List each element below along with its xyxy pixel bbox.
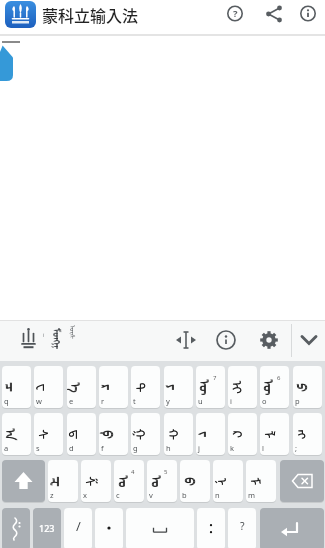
button[interactable]: ᠣ bbox=[114, 460, 144, 502]
button[interactable]: ᠫ bbox=[293, 366, 322, 408]
button[interactable]: ᠢ bbox=[228, 366, 257, 408]
staticText: ᠦ bbox=[196, 379, 218, 396]
staticText: ᠢ bbox=[228, 380, 251, 394]
button[interactable] bbox=[280, 460, 324, 502]
staticText: 7 bbox=[213, 374, 217, 382]
button[interactable] bbox=[5, 1, 36, 28]
button[interactable]: ᠶ bbox=[164, 366, 193, 408]
staticText: 5 bbox=[164, 468, 168, 476]
staticText: c bbox=[116, 490, 120, 500]
button[interactable]: ᠴ bbox=[2, 366, 31, 408]
staticText: ᠠ bbox=[2, 428, 24, 441]
staticText: ᠷ bbox=[99, 384, 121, 391]
staticText: s bbox=[36, 443, 40, 453]
staticText: ᠶ bbox=[164, 384, 186, 391]
staticText: d bbox=[69, 443, 74, 453]
staticText: o bbox=[262, 396, 267, 406]
staticText: ᠵ bbox=[196, 431, 218, 438]
button[interactable] bbox=[298, 329, 320, 351]
button[interactable] bbox=[197, 508, 225, 548]
button[interactable]: ᠥ bbox=[260, 366, 289, 408]
button[interactable] bbox=[33, 508, 61, 548]
staticText: k bbox=[230, 443, 235, 453]
staticText: 蒙科立输入法 bbox=[42, 3, 139, 26]
staticText: ᠡ bbox=[67, 382, 89, 393]
button[interactable] bbox=[126, 508, 194, 548]
button[interactable]: ᠲ bbox=[131, 366, 160, 408]
button[interactable] bbox=[265, 5, 283, 23]
staticText: ᠰ bbox=[34, 429, 57, 439]
button[interactable]: ᠺ bbox=[228, 413, 257, 455]
staticText: w bbox=[36, 396, 42, 406]
button[interactable] bbox=[260, 508, 324, 548]
button[interactable] bbox=[18, 328, 39, 352]
staticText: ᠹ bbox=[99, 430, 121, 439]
button[interactable]: ᠭ bbox=[131, 413, 160, 455]
button[interactable]: ᠡ bbox=[67, 366, 96, 408]
staticText: ᠴ bbox=[2, 382, 24, 393]
button[interactable] bbox=[2, 508, 30, 548]
button[interactable]: ᠵ bbox=[196, 413, 225, 455]
staticText: f bbox=[101, 443, 104, 453]
staticText: ᠪ bbox=[180, 477, 203, 486]
staticText: q bbox=[4, 396, 9, 406]
button[interactable] bbox=[2, 460, 45, 502]
button[interactable] bbox=[259, 330, 279, 350]
button[interactable]: ᠷ bbox=[99, 366, 128, 408]
button[interactable] bbox=[95, 508, 123, 548]
staticText: v bbox=[149, 490, 153, 500]
staticText: ᠺ bbox=[228, 430, 251, 438]
button[interactable]: ᠨ bbox=[213, 460, 243, 502]
staticText: l bbox=[262, 443, 264, 453]
staticText: ᠯ bbox=[260, 430, 282, 438]
staticText: i bbox=[230, 396, 232, 406]
staticText: z bbox=[50, 490, 54, 500]
staticText: ᠰ bbox=[34, 429, 56, 439]
staticText: ᠲ bbox=[131, 382, 153, 392]
button[interactable]: ᠽ bbox=[48, 460, 78, 502]
staticText: ᠨ bbox=[213, 477, 235, 485]
button[interactable]: ᠪ bbox=[180, 460, 210, 502]
staticText: ᠭ bbox=[131, 428, 153, 440]
button[interactable]: ? bbox=[226, 5, 244, 23]
staticText: 123 bbox=[39, 522, 55, 534]
button[interactable]: ᠮᠣᠩᠭᠣᠯ bbox=[43, 328, 67, 352]
button[interactable] bbox=[228, 508, 256, 548]
button[interactable]: ᠬ bbox=[164, 413, 193, 455]
button[interactable]: ᠤ bbox=[147, 460, 177, 502]
button[interactable] bbox=[64, 508, 92, 548]
button[interactable]: ᠰ bbox=[34, 413, 63, 455]
staticText: ᠱ bbox=[81, 476, 103, 486]
staticText: ᠦᠰᠦᠭ bbox=[64, 325, 80, 341]
staticText: b bbox=[182, 490, 187, 500]
button[interactable]: ᠦ bbox=[196, 366, 225, 408]
staticText: ᠮᠣᠩᠭᠣᠯ bbox=[43, 328, 67, 352]
button[interactable]: ᠸ bbox=[34, 366, 63, 408]
button[interactable]: ᠳ bbox=[67, 413, 96, 455]
button[interactable]: ᠹ bbox=[99, 413, 128, 455]
staticText: ᠬ bbox=[164, 428, 187, 440]
staticText: ᠦ bbox=[196, 379, 218, 396]
staticText: r bbox=[101, 396, 105, 406]
staticText: ᠭ bbox=[131, 428, 154, 440]
button[interactable] bbox=[175, 329, 197, 351]
button[interactable] bbox=[299, 5, 317, 23]
button[interactable]: ᠩ bbox=[293, 413, 322, 455]
staticText: ᠵ bbox=[196, 431, 218, 438]
staticText: ᠮᠣᠩᠭᠣᠯ bbox=[43, 328, 67, 352]
button[interactable]: ᠯ bbox=[260, 413, 289, 455]
staticText: x bbox=[83, 490, 87, 500]
staticText: p bbox=[295, 396, 300, 406]
staticText: ᠣ bbox=[114, 475, 137, 488]
staticText: ? bbox=[233, 7, 238, 20]
button[interactable]: ᠱ bbox=[81, 460, 111, 502]
staticText: a bbox=[4, 443, 9, 453]
staticText: m bbox=[248, 490, 256, 500]
staticText: ᠷ bbox=[99, 384, 121, 391]
staticText: ᠮ bbox=[246, 477, 268, 485]
button[interactable]: ᠠ bbox=[2, 413, 31, 455]
staticText: e bbox=[69, 396, 74, 406]
staticText: / bbox=[76, 517, 81, 535]
button[interactable] bbox=[216, 330, 236, 350]
button[interactable]: ᠮ bbox=[246, 460, 276, 502]
